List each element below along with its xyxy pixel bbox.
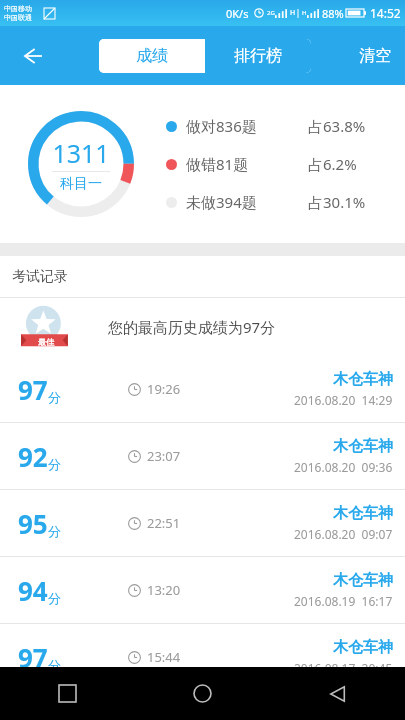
staticText: 13:20 (147, 581, 181, 599)
staticText: 考试记录 (12, 268, 68, 286)
button[interactable]: 92 (0, 423, 405, 490)
staticText: 14:52 (370, 5, 401, 21)
staticText: 木仓车神 (333, 571, 393, 590)
staticText: 科目一 (60, 175, 102, 193)
button[interactable]: 95 (0, 490, 405, 557)
staticText: H (302, 9, 307, 17)
staticText: 2016.08.20 09:36 (294, 459, 393, 475)
staticText: 2016.08.20 14:29 (294, 392, 393, 408)
staticText: 分 (48, 389, 61, 405)
staticText: 2G (267, 9, 275, 17)
staticText: H (290, 8, 296, 18)
button[interactable]: 清空 (345, 26, 405, 85)
staticText: 94 (18, 573, 48, 608)
button[interactable]: 最佳 (0, 298, 405, 356)
button[interactable]: 94 (0, 557, 405, 624)
button[interactable]: 成绩 (99, 39, 205, 73)
staticText: 2016.08.20 09:07 (294, 526, 393, 542)
staticText: 2016.08.19 16:17 (294, 593, 393, 609)
staticText: 木仓车神 (333, 437, 393, 456)
button[interactable]: 排行榜 (205, 39, 311, 73)
staticText: 未做394题 (186, 192, 257, 212)
staticText: 木仓车神 (333, 638, 393, 657)
staticText: 22:51 (147, 514, 181, 532)
button[interactable]: Home (135, 667, 270, 720)
staticText: 15:44 (147, 648, 181, 666)
staticText: 97 (18, 372, 48, 407)
button[interactable]: Back (270, 667, 405, 720)
staticText: 95 (18, 506, 48, 541)
staticText: 您的最高历史成绩为97分 (108, 317, 276, 337)
staticText: 0K/s (226, 6, 249, 21)
staticText: 木仓车神 (333, 370, 393, 389)
staticText: 2016.08.17 20:45 (294, 660, 393, 667)
staticText: 92 (18, 439, 48, 474)
staticText: 19:26 (147, 380, 181, 398)
staticText: 23:07 (147, 447, 181, 465)
staticText: 中国联通 (4, 13, 32, 22)
staticText: 分 (48, 456, 61, 472)
staticText: 占30.1% (308, 192, 366, 212)
button[interactable]: Back (8, 32, 56, 80)
staticText: 中国移动 (4, 4, 32, 13)
staticText: 成绩 (136, 46, 168, 66)
staticText: 分 (48, 523, 61, 539)
staticText: 清空 (359, 46, 391, 66)
staticText: 排行榜 (234, 46, 282, 66)
staticText: 做错81题 (186, 154, 249, 174)
staticText: 分 (48, 657, 61, 667)
staticText: 1311 (52, 136, 110, 170)
staticText: 分 (48, 590, 61, 606)
staticText: 88% (322, 6, 344, 21)
staticText: 最佳 (38, 337, 54, 347)
button[interactable]: Recents (0, 667, 135, 720)
staticText: 97 (18, 640, 48, 667)
button[interactable]: 97 (0, 624, 405, 667)
staticText: 占63.8% (308, 116, 366, 136)
staticText: 占6.2% (308, 154, 357, 174)
staticText: 木仓车神 (333, 504, 393, 523)
staticText: 做对836题 (186, 116, 257, 136)
button[interactable]: 97 (0, 356, 405, 423)
